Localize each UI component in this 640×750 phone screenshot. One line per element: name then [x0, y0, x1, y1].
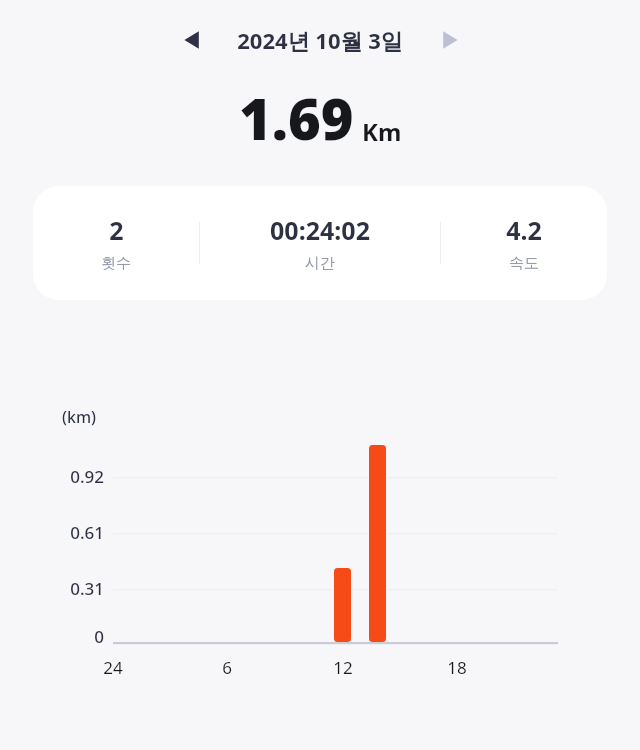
staticText: 0.61 — [70, 521, 104, 544]
staticText: 시간 — [305, 254, 335, 273]
staticText: 1.69 — [239, 80, 354, 156]
staticText: 속도 — [509, 254, 539, 273]
staticText: 6 — [222, 656, 232, 679]
staticText: 4.2 — [506, 213, 542, 247]
staticText: 2 — [109, 213, 124, 247]
button[interactable]: 4.2 — [441, 209, 607, 277]
button[interactable]: 2 — [33, 209, 199, 277]
staticText: 24 — [103, 656, 123, 679]
staticText: 00:24:02 — [270, 213, 370, 247]
staticText: (km) — [62, 406, 97, 428]
button[interactable]: Next day — [430, 21, 470, 59]
staticText: 0.31 — [70, 577, 104, 600]
staticText: 0 — [94, 625, 104, 648]
staticText: 12 — [333, 656, 353, 679]
staticText: 0.92 — [70, 465, 104, 488]
staticText: 18 — [447, 656, 467, 679]
button[interactable]: 00:24:02 — [200, 209, 440, 277]
button[interactable]: Previous day — [172, 21, 212, 59]
staticText: 2024년 10월 3일 — [237, 25, 403, 55]
button[interactable]: 2024년 10월 3일 — [222, 18, 418, 62]
staticText: 횟수 — [101, 254, 131, 273]
staticText: Km — [362, 115, 402, 148]
